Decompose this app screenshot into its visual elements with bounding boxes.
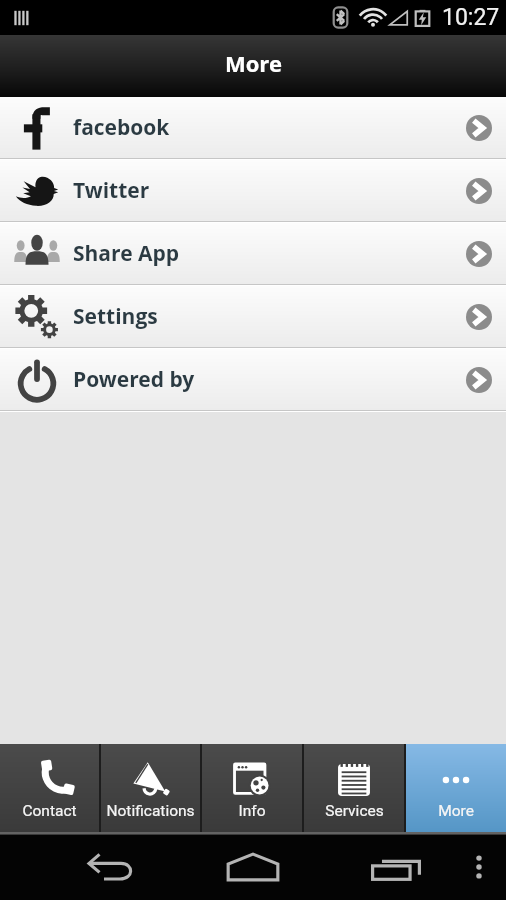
button[interactable]: Settings	[0, 286, 506, 347]
button[interactable]: More	[406, 744, 506, 832]
staticText: More	[225, 48, 282, 78]
staticText: Services	[325, 802, 384, 820]
button[interactable]: Back	[0, 834, 144, 900]
staticText: More	[438, 802, 474, 820]
button[interactable]: Services	[304, 744, 404, 832]
staticText: 10:27	[442, 4, 500, 31]
staticText: Share App	[73, 239, 180, 268]
staticText: Twitter	[73, 176, 150, 205]
button[interactable]: Info	[202, 744, 302, 832]
button[interactable]: facebook	[0, 97, 506, 158]
staticText: Powered by	[73, 365, 195, 394]
button[interactable]: Recent apps	[324, 834, 466, 900]
button[interactable]: More options	[459, 834, 499, 900]
button[interactable]: Home	[182, 834, 324, 900]
staticText: Info	[238, 802, 266, 820]
button[interactable]: Share App	[0, 223, 506, 284]
staticText: Settings	[73, 302, 158, 331]
button[interactable]: Twitter	[0, 160, 506, 221]
staticText: facebook	[73, 113, 170, 142]
button[interactable]: Notifications	[101, 744, 200, 832]
button[interactable]: Contact	[0, 744, 99, 832]
button[interactable]: Powered by	[0, 349, 506, 410]
staticText: Notifications	[106, 802, 195, 820]
staticText: Contact	[22, 802, 77, 820]
